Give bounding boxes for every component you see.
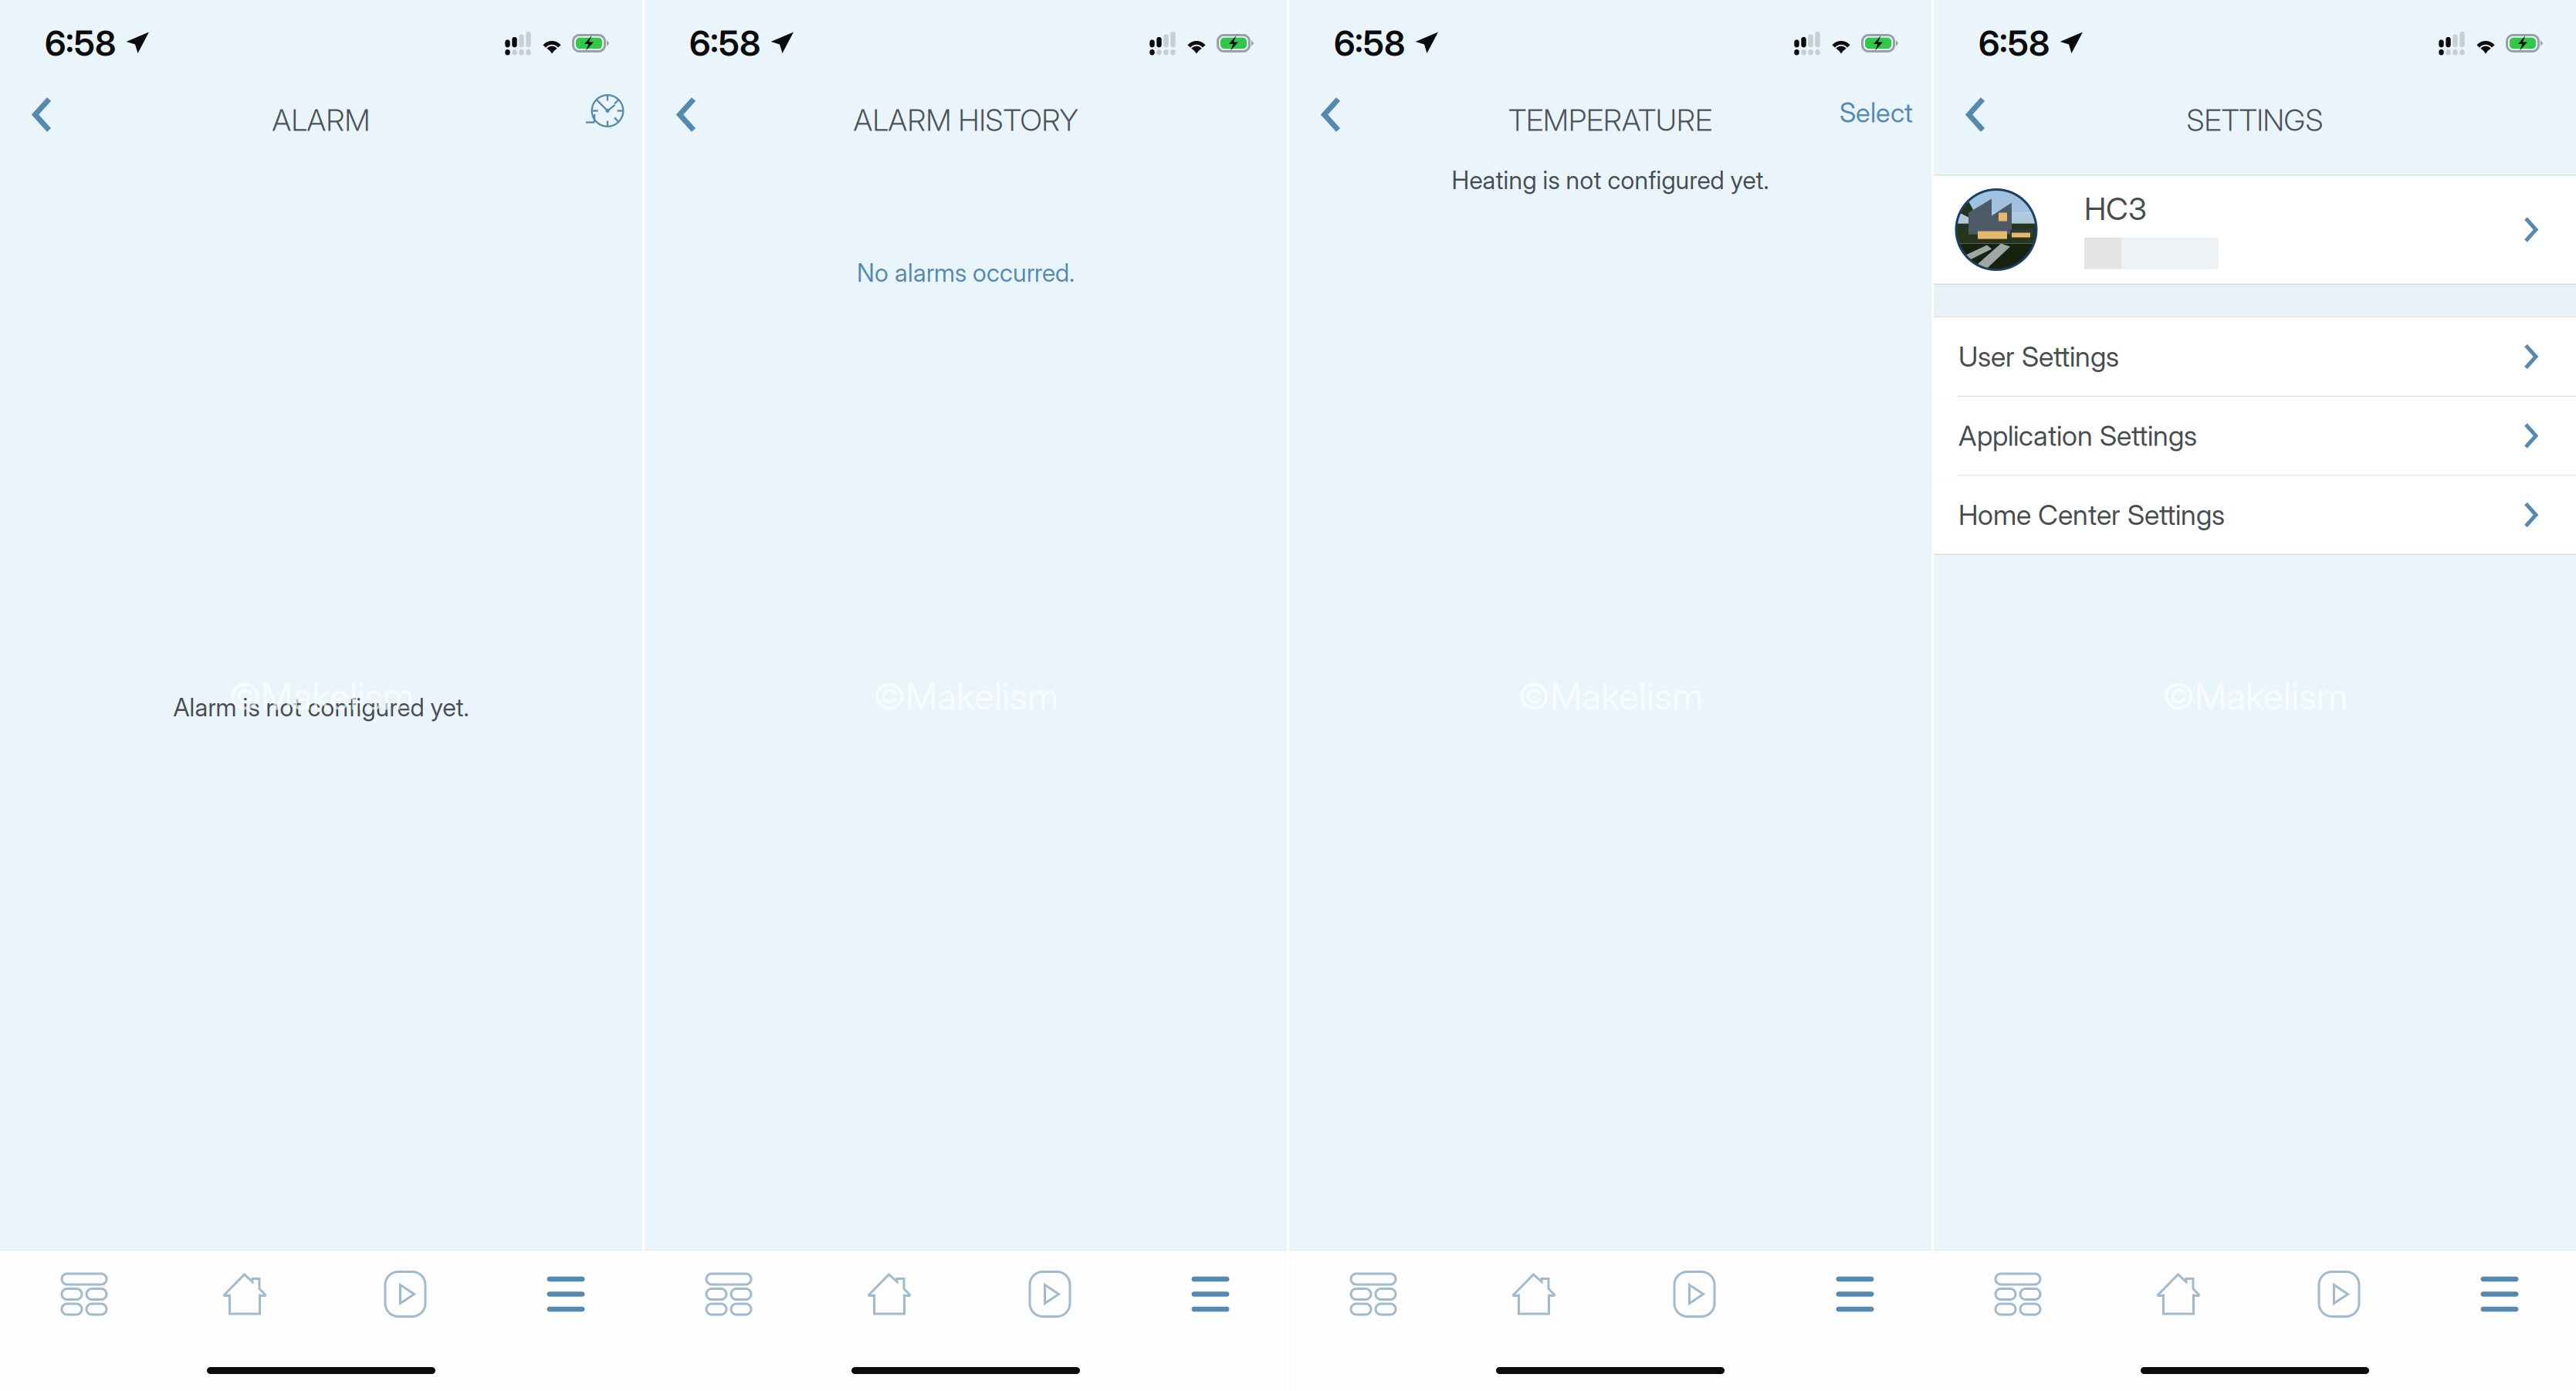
button[interactable]: Back: [1951, 86, 2001, 174]
staticText: HC3: [2084, 190, 2147, 227]
button[interactable]: Back: [17, 86, 67, 174]
staticText: ©Makelism: [1518, 674, 1703, 719]
button[interactable]: Rooms: [1293, 1251, 1454, 1338]
staticText: Home Center Settings: [1958, 498, 2225, 532]
button[interactable]: Scenes: [970, 1251, 1130, 1338]
button[interactable]: User Settings: [1934, 318, 2576, 396]
button[interactable]: Back: [1306, 86, 1356, 174]
staticText: 6:58: [689, 22, 760, 64]
staticText: Alarm is not configured yet.: [173, 692, 469, 722]
staticText: Application Settings: [1958, 419, 2197, 453]
staticText: SETTINGS: [2187, 102, 2323, 138]
button[interactable]: Select: [1833, 86, 1913, 181]
staticText: User Settings: [1958, 340, 2119, 373]
button[interactable]: Rooms: [1938, 1251, 2098, 1338]
staticText: 6:58: [45, 22, 116, 64]
button[interactable]: Alarm history: [570, 86, 624, 175]
button[interactable]: Home: [164, 1251, 325, 1338]
staticText: 6:58: [1979, 22, 2050, 64]
button[interactable]: Scenes: [1614, 1251, 1775, 1338]
staticText: Heating is not configured yet.: [1452, 165, 1769, 195]
button[interactable]: Application Settings: [1934, 397, 2576, 475]
button[interactable]: Home Center Settings: [1934, 476, 2576, 554]
button[interactable]: Home: [809, 1251, 970, 1338]
button[interactable]: Home: [2098, 1251, 2259, 1338]
button[interactable]: Menu: [2419, 1251, 2576, 1338]
button[interactable]: Rooms: [4, 1251, 164, 1338]
button[interactable]: Scenes: [2259, 1251, 2419, 1338]
button[interactable]: Menu: [486, 1251, 646, 1338]
staticText: ©Makelism: [2162, 674, 2348, 719]
staticText: 6:58: [1334, 22, 1405, 64]
staticText: ALARM: [272, 102, 370, 138]
staticText: No alarms occurred.: [857, 258, 1075, 288]
button[interactable]: Rooms: [648, 1251, 809, 1338]
staticText: ©Makelism: [228, 674, 414, 719]
staticText: TEMPERATURE: [1508, 102, 1712, 138]
staticText: ©Makelism: [873, 674, 1058, 719]
button[interactable]: Back: [662, 86, 712, 174]
button[interactable]: Scenes: [325, 1251, 486, 1338]
button[interactable]: HC3: [1934, 176, 2576, 284]
staticText: ALARM HISTORY: [853, 102, 1078, 138]
button[interactable]: Menu: [1130, 1251, 1291, 1338]
button[interactable]: Menu: [1775, 1251, 1935, 1338]
staticText: Select: [1840, 96, 1913, 129]
button[interactable]: Home: [1454, 1251, 1614, 1338]
